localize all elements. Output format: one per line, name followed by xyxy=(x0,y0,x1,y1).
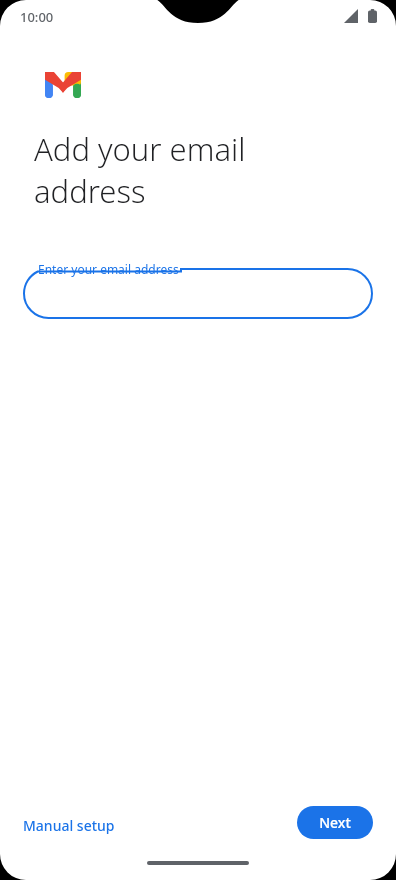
staticText: Next xyxy=(319,813,351,832)
button[interactable]: Manual setup xyxy=(14,810,124,841)
button[interactable]: Next xyxy=(297,806,373,839)
staticText: Manual setup xyxy=(23,816,115,835)
staticText: address xyxy=(34,170,146,212)
staticText: 10:00 xyxy=(20,8,54,26)
staticText: Enter your email address xyxy=(38,261,179,277)
staticText: Add your email xyxy=(34,128,246,170)
button[interactable] xyxy=(23,268,373,319)
